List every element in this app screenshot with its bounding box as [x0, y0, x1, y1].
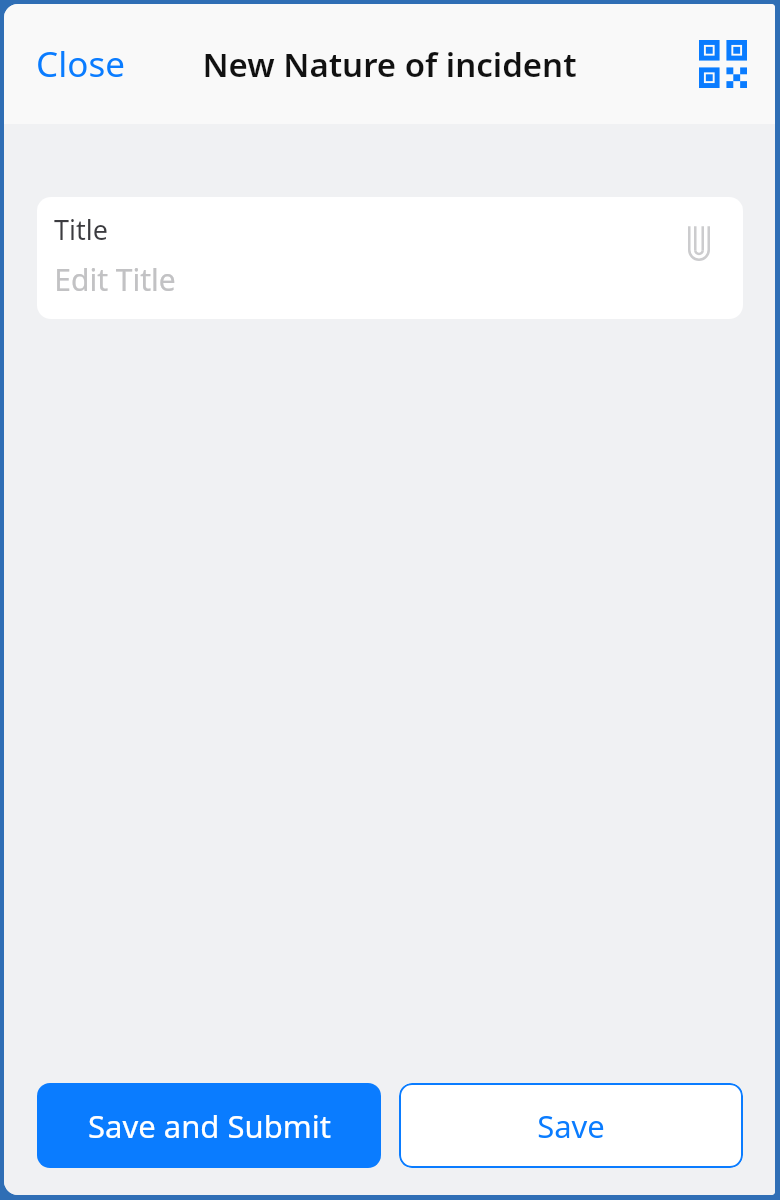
button[interactable]: Attach file — [671, 215, 727, 271]
button[interactable]: Title — [37, 197, 743, 319]
button[interactable]: Scan QR code — [692, 33, 754, 95]
staticText: Save — [537, 1105, 605, 1147]
staticText: Edit Title — [54, 259, 176, 300]
staticText: Save and Submit — [88, 1105, 331, 1147]
button[interactable]: Close — [22, 32, 139, 96]
staticText: New Nature of incident — [202, 42, 577, 87]
button[interactable]: Save — [399, 1083, 743, 1168]
button[interactable]: Save and Submit — [37, 1083, 381, 1168]
staticText: Close — [36, 40, 125, 88]
staticText: Title — [54, 211, 108, 248]
